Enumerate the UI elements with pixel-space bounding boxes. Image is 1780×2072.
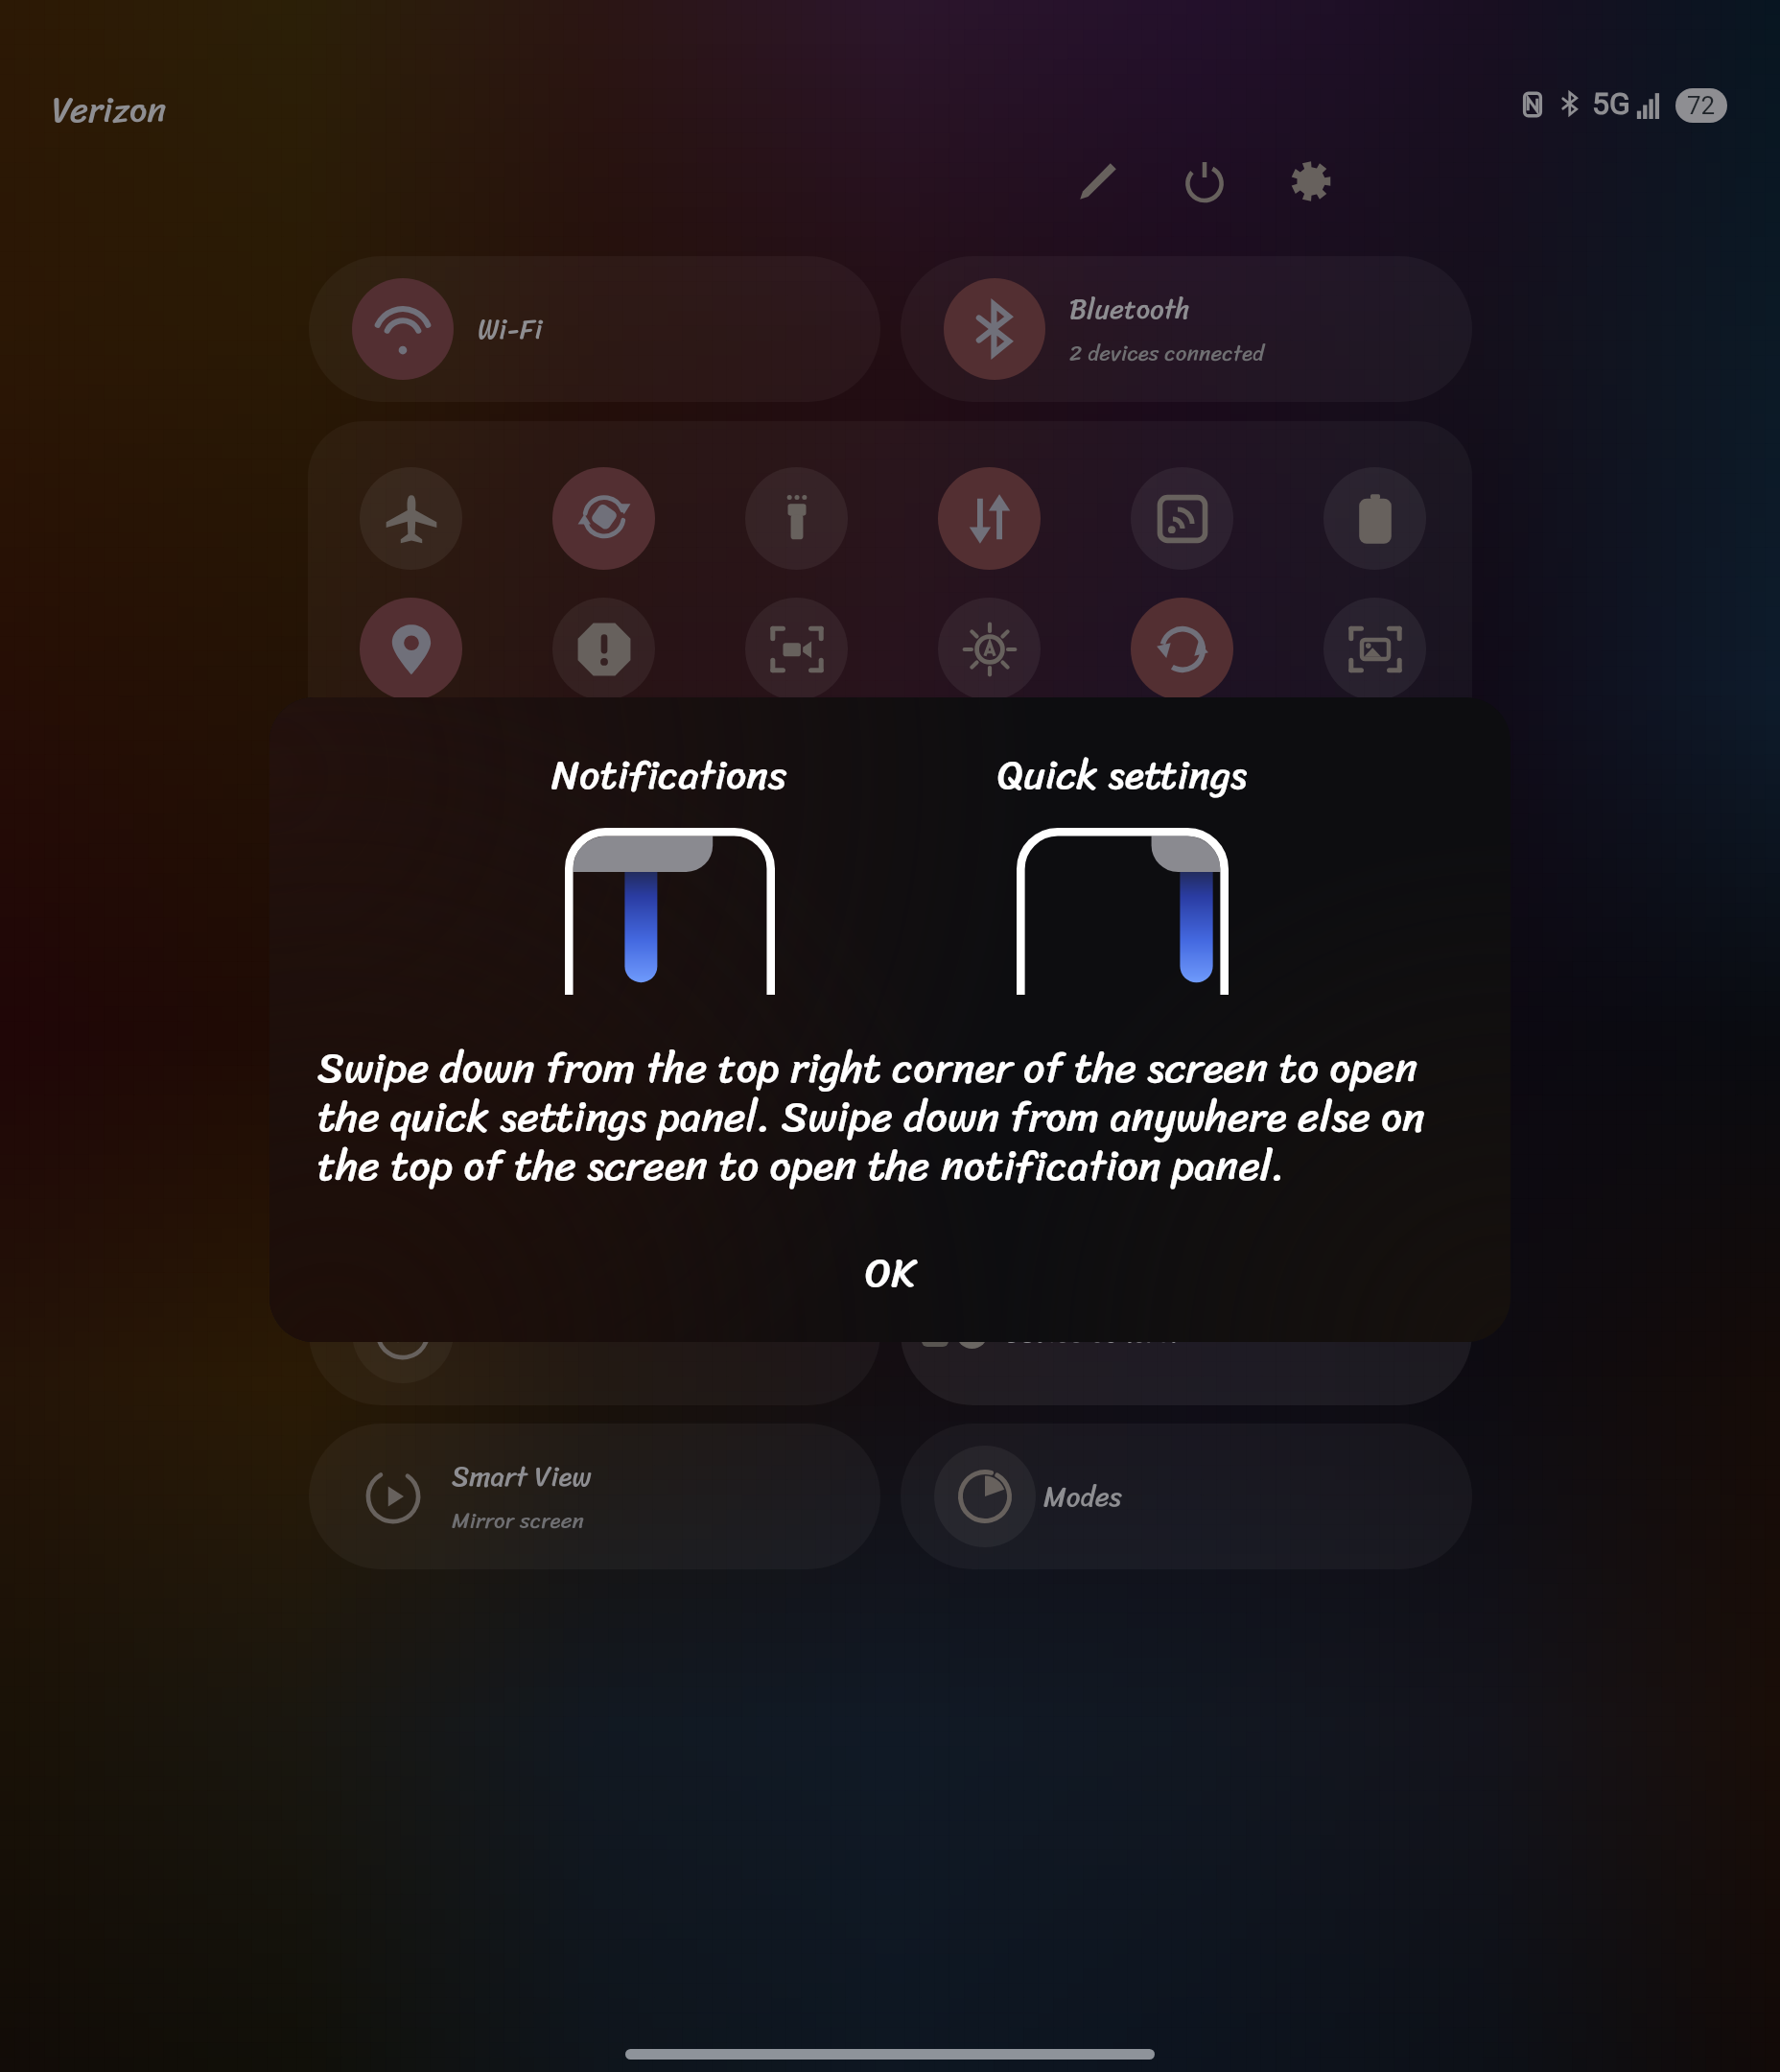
button[interactable]: Toggle <box>1131 598 1233 700</box>
staticText: OK <box>865 1237 916 1308</box>
button[interactable]: Smart View <box>309 1424 880 1569</box>
button[interactable]: Power <box>1170 147 1239 216</box>
staticText: Device control <box>1005 1308 1181 1357</box>
staticText: Modes <box>1043 1472 1122 1521</box>
staticText: Quick settings <box>997 740 1248 811</box>
staticText: Notifications <box>551 740 787 811</box>
button[interactable] <box>309 1260 880 1405</box>
staticText: Wi-Fi <box>478 305 543 354</box>
button[interactable]: Toggle <box>360 598 462 700</box>
button[interactable]: Modes <box>901 1424 1472 1569</box>
button[interactable]: Settings <box>1276 147 1346 216</box>
button[interactable]: Toggle <box>1131 467 1233 570</box>
button[interactable]: Toggle <box>745 598 848 700</box>
button[interactable]: Toggle <box>938 467 1041 570</box>
staticText: 72 <box>1687 91 1716 120</box>
button[interactable]: Toggle <box>1323 467 1426 570</box>
staticText: Bluetooth <box>1069 285 1190 334</box>
staticText: Swipe down from the top right corner of … <box>317 1030 1435 1203</box>
button[interactable]: Wi-Fi <box>309 256 880 402</box>
staticText: Mirror screen <box>452 1501 584 1541</box>
button[interactable]: Edit <box>1064 147 1133 216</box>
button[interactable]: Toggle <box>745 467 848 570</box>
button[interactable]: Toggle <box>552 598 655 700</box>
staticText: Verizon <box>52 79 167 141</box>
button[interactable]: Toggle <box>938 598 1041 700</box>
staticText: Smart View <box>452 1452 592 1501</box>
staticText: 5G <box>1592 85 1630 122</box>
button[interactable]: Toggle <box>360 467 462 570</box>
button[interactable]: Toggle <box>1323 598 1426 700</box>
staticText: 2 devices connected <box>1069 334 1265 373</box>
button[interactable]: Bluetooth <box>901 256 1472 402</box>
button[interactable]: OK <box>269 1220 1511 1326</box>
button[interactable]: Device control <box>901 1260 1472 1405</box>
button[interactable]: Toggle <box>552 467 655 570</box>
